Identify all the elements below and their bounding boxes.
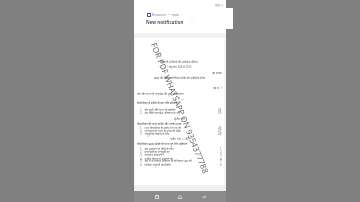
staticText: 6 (220, 163, 222, 167)
staticText: 27 (218, 129, 222, 133)
staticText: 5. संघ में राज्यकीय संविधान के विनियमन क… (140, 159, 222, 163)
button[interactable]: Back (196, 191, 212, 202)
staticText: 2. संघ विधि परमादेश अधिकार के अनु (140, 111, 222, 115)
staticText: 2 (220, 150, 222, 154)
staticText: पृष्ठ संख्या (137, 71, 222, 75)
button[interactable]: Home (172, 191, 188, 202)
staticText: 26 (218, 126, 222, 130)
staticText: द्वितीय भाग (137, 117, 222, 121)
staticText: संसद की विधि अधिनियम शक्ति की प्रादेशिक … (137, 76, 222, 80)
staticText: 24 (218, 108, 222, 112)
button[interactable]: Recent apps (149, 191, 165, 202)
staticText: विधायिका में शक्ति के स्तर और सीमाएं (137, 101, 222, 105)
staticText: 2. कार्यपालिका अनुसूची का (140, 150, 222, 154)
staticText: (अनुच्छेद 245 से 255) (137, 65, 222, 69)
staticText: 3. अनुच्छेद संशोधन 1 (140, 153, 222, 157)
staticText: Browser • now (152, 12, 179, 17)
staticText: विधायिका की अन्य शक्ति और उनके प्रभाव (137, 122, 222, 126)
staticText: 1. संघ सूची और राज्य के संबंधित (140, 108, 222, 112)
staticText: 25 (218, 111, 222, 115)
staticText: 5 (220, 159, 222, 163)
staticText: 2. राज्यपाल के राज्य के प्रबंध की सीमा (140, 129, 222, 133)
staticText: 6. विधिक अनुसंगी कार्यविधि (140, 163, 222, 167)
staticText: 3 (220, 153, 222, 157)
staticText: संघ और राज्य के अनुच्छेद की सूची का विवर… (137, 92, 222, 96)
staticText: विधायी शक्तियों की प्रादेशिक सीमाएं (137, 60, 222, 64)
staticText: 4 (220, 157, 222, 161)
staticText: 1. संघ प्रशासन पर विधि के लिए (140, 147, 222, 151)
staticText: New notification (146, 19, 184, 25)
staticText: तृतीय भाग — 48 (137, 137, 222, 141)
staticText: 28 (218, 132, 222, 136)
staticText: 1. अन्य विधायिका के संबंध में राज्य की (140, 126, 222, 130)
staticText: विधायिका प्रक्रम शक्ति के राज्य पुर और स… (137, 142, 222, 146)
staticText: 4. उपबंध विधान में संशोधन को (140, 157, 222, 161)
staticText: 3. अनुसूचित विषयों के लिए (140, 132, 222, 136)
staticText: पृष्ठ सं. 1 (137, 86, 222, 90)
button[interactable]: Browser • now (141, 8, 233, 29)
staticText: — 1 — (137, 97, 222, 101)
staticText: 1 (220, 147, 222, 151)
